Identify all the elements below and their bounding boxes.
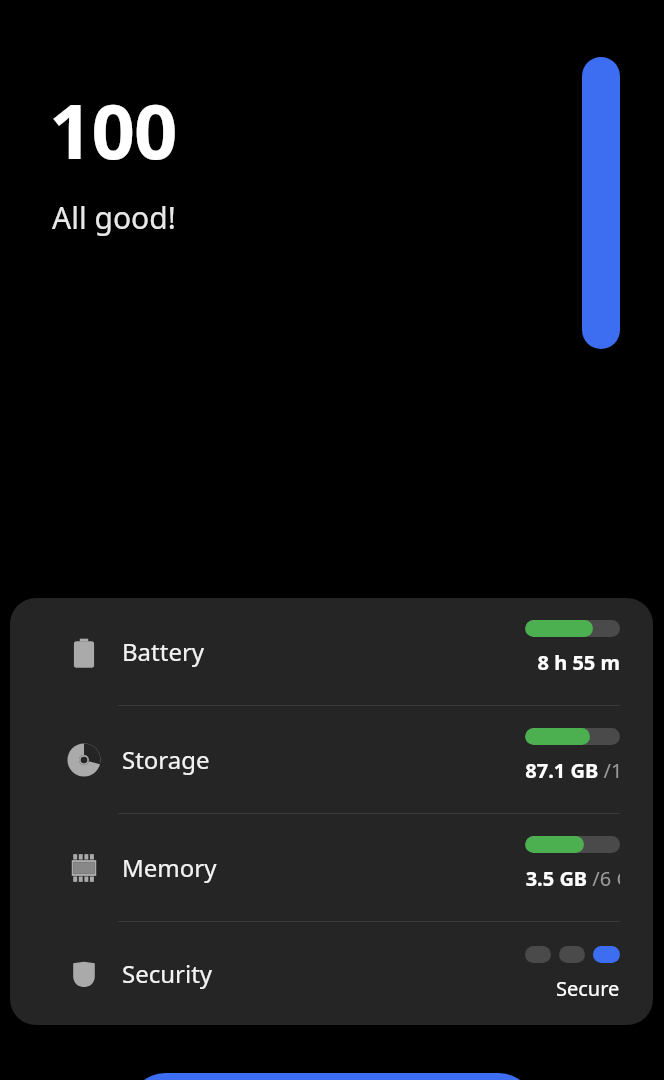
staticText: Battery <box>122 635 205 668</box>
staticText: 3.5 GB /6 GB <box>525 865 620 892</box>
staticText: All good! <box>52 197 176 238</box>
button[interactable]: Security <box>10 922 653 1025</box>
staticText: Security <box>122 957 213 990</box>
staticText: Memory <box>122 851 217 884</box>
other: Overall health gauge <box>582 57 620 349</box>
button[interactable]: Optimize <box>130 1073 534 1080</box>
button[interactable]: Storage <box>10 706 653 813</box>
staticText: Storage <box>122 743 210 776</box>
staticText: Secure <box>556 975 620 1002</box>
staticText: 87.1 GB /128 GB <box>525 757 620 784</box>
button[interactable]: Battery <box>10 598 653 705</box>
staticText: 8 h 55 m <box>537 649 620 676</box>
button[interactable]: Memory <box>10 814 653 921</box>
staticText: 100 <box>49 78 177 182</box>
